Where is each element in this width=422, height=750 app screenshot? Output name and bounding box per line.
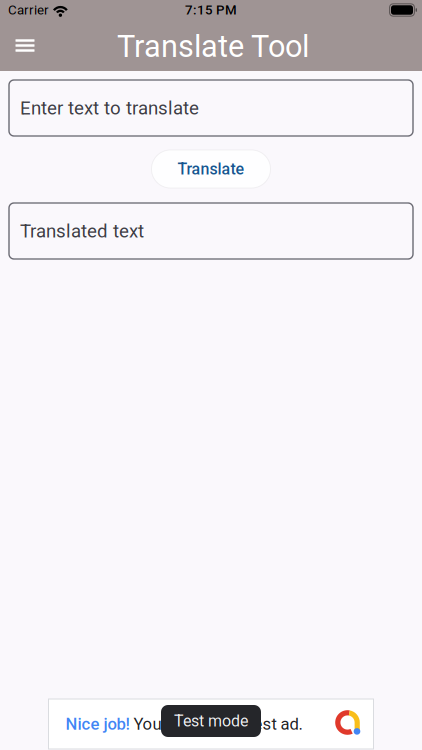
button[interactable]: Translate: [151, 150, 270, 188]
staticText: Carrier: [8, 2, 49, 18]
staticText: Translated text: [20, 220, 144, 242]
button[interactable]: Translated text: [9, 203, 413, 259]
staticText: 7:15 PM: [185, 2, 237, 18]
staticText: Translate: [177, 160, 244, 178]
staticText: Test mode: [174, 712, 248, 730]
staticText: Enter text to translate: [20, 97, 199, 119]
staticText: Translate Tool: [117, 28, 309, 64]
button[interactable]: Nice job!: [48, 699, 373, 749]
button[interactable]: Enter text to translate: [9, 80, 413, 136]
staticText: Nice job!: [65, 714, 129, 734]
staticText: You're seeing a test ad.: [129, 714, 302, 734]
button[interactable]: Menu: [3, 23, 47, 67]
